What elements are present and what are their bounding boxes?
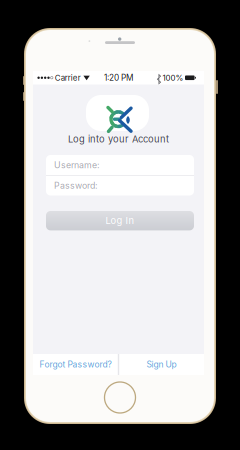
staticText: 100%	[163, 73, 184, 83]
button[interactable]: Forgot Password?	[33, 354, 118, 375]
button[interactable]: Log In	[33, 71, 204, 375]
staticText: Sign Up	[147, 359, 177, 370]
staticText: Username:	[54, 160, 100, 170]
staticText: Forgot Password?	[39, 359, 111, 370]
button[interactable]: Sign Up	[119, 354, 204, 375]
staticText: Log into your Account	[68, 133, 169, 145]
staticText: Log In	[105, 215, 134, 226]
staticText: 1:20 PM	[104, 73, 133, 83]
staticText: Carrier	[55, 73, 81, 83]
staticText: Password:	[54, 180, 98, 191]
